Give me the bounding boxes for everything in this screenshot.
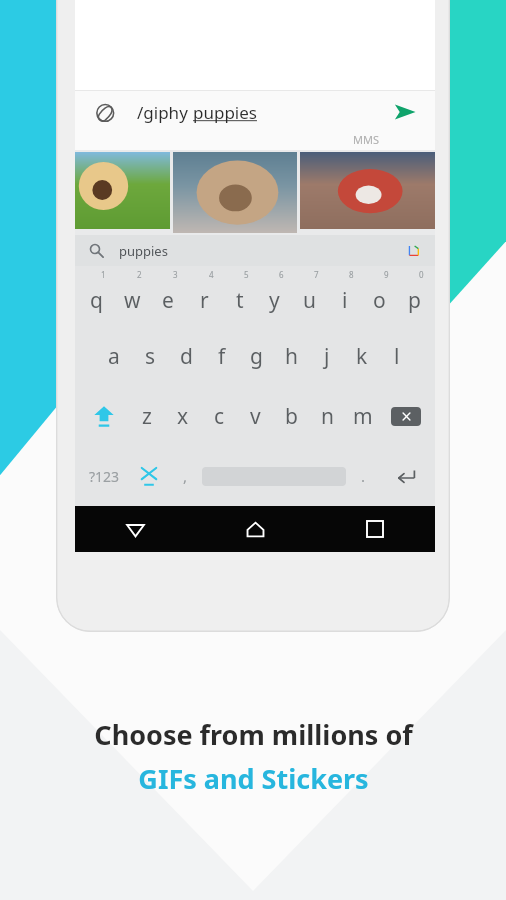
staticText: v	[250, 402, 261, 431]
button[interactable]: n	[309, 386, 345, 446]
button[interactable]: ?123	[79, 446, 130, 506]
button[interactable]: 5	[222, 266, 257, 326]
staticText: ?123	[89, 467, 120, 486]
button[interactable]: GIF result	[173, 152, 297, 233]
staticText: 2	[137, 269, 142, 280]
staticText: l	[394, 342, 400, 371]
button[interactable]: 7	[292, 266, 327, 326]
button[interactable]: m	[345, 386, 381, 446]
staticText: k	[356, 342, 368, 371]
button[interactable]: GIF result	[75, 152, 170, 229]
button[interactable]: 3	[150, 266, 186, 326]
button[interactable]: 4	[186, 266, 222, 326]
staticText: puppies	[193, 101, 257, 124]
staticText: puppies	[119, 242, 168, 260]
button[interactable]: Shift	[79, 386, 129, 446]
button[interactable]: Space	[202, 453, 346, 499]
staticText: q	[90, 286, 103, 315]
staticText: 8	[349, 269, 354, 280]
button[interactable]: 6	[257, 266, 292, 326]
button[interactable]: b	[273, 386, 309, 446]
button[interactable]: s	[132, 326, 168, 386]
button[interactable]: 1	[78, 266, 114, 326]
button[interactable]: k	[344, 326, 379, 386]
button[interactable]: d	[168, 326, 204, 386]
staticText: h	[285, 342, 298, 371]
staticText: i	[342, 286, 348, 315]
button[interactable]: a	[96, 326, 132, 386]
staticText: 6	[279, 269, 284, 280]
staticText: 3	[173, 269, 178, 280]
staticText: 4	[209, 269, 214, 280]
button[interactable]: Back	[75, 506, 195, 552]
staticText: u	[303, 286, 316, 315]
button[interactable]: g	[239, 326, 274, 386]
staticText: x	[177, 402, 189, 431]
button[interactable]: j	[309, 326, 344, 386]
staticText: w	[124, 286, 141, 315]
staticText: c	[214, 402, 225, 431]
button[interactable]: f	[204, 326, 239, 386]
staticText: z	[142, 402, 152, 431]
button[interactable]: 9	[362, 266, 397, 326]
staticText: o	[373, 286, 386, 315]
staticText: g	[250, 342, 263, 371]
staticText: t	[236, 286, 244, 315]
staticText: e	[162, 286, 174, 315]
button[interactable]: Attach	[89, 95, 123, 129]
button[interactable]: Send	[387, 94, 423, 130]
staticText: 1	[101, 269, 106, 280]
button[interactable]: z	[129, 386, 165, 446]
staticText: MMS	[353, 132, 379, 147]
staticText: b	[285, 402, 298, 431]
staticText: /giphy	[137, 101, 193, 124]
staticText: a	[108, 342, 120, 371]
button[interactable]: Home	[195, 506, 315, 552]
staticText: m	[353, 402, 373, 431]
button[interactable]: Backspace	[381, 386, 431, 446]
button[interactable]: 2	[114, 266, 150, 326]
staticText: GIFs and Stickers	[138, 760, 369, 797]
staticText: 9	[384, 269, 389, 280]
staticText: 7	[314, 269, 319, 280]
button[interactable]: Enter	[380, 446, 431, 506]
button[interactable]: x	[165, 386, 201, 446]
button[interactable]: 8	[327, 266, 362, 326]
button[interactable]: puppies	[75, 235, 435, 266]
staticText: f	[218, 342, 226, 371]
staticText: s	[145, 342, 156, 371]
button[interactable]: ,	[168, 446, 202, 506]
staticText: d	[180, 342, 193, 371]
staticText: j	[324, 342, 330, 371]
staticText: 5	[244, 269, 249, 280]
staticText: ,	[183, 466, 188, 486]
staticText: .	[361, 466, 366, 486]
button[interactable]: v	[237, 386, 273, 446]
staticText: 0	[419, 269, 424, 280]
staticText: n	[321, 402, 334, 431]
button[interactable]: 0	[397, 266, 432, 326]
button[interactable]: Stickers	[130, 446, 168, 506]
button[interactable]: h	[274, 326, 309, 386]
staticText: r	[200, 286, 209, 315]
staticText: Choose from millions of	[94, 716, 413, 753]
button[interactable]: GIF result	[300, 152, 435, 229]
staticText: y	[269, 286, 280, 315]
button[interactable]: Recents	[315, 506, 435, 552]
button[interactable]: c	[201, 386, 237, 446]
staticText: p	[408, 286, 421, 315]
button[interactable]: l	[379, 326, 414, 386]
